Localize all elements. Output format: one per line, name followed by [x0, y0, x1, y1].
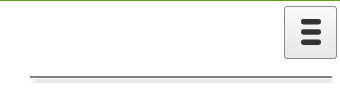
button[interactable]: Menu	[284, 6, 337, 59]
